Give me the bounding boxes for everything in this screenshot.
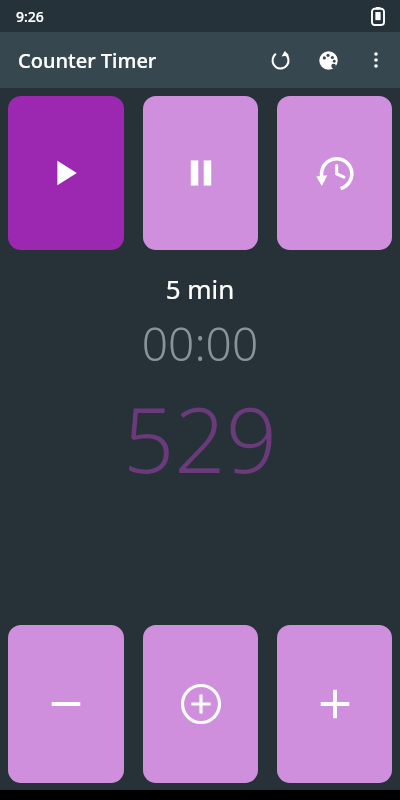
button[interactable]: Start <box>8 96 124 250</box>
staticText: 00:00 <box>0 312 400 375</box>
staticText: 5 min <box>0 271 400 306</box>
button[interactable]: Increase <box>277 625 392 783</box>
staticText: 9:26 <box>16 7 44 26</box>
button[interactable]: More options <box>352 36 400 84</box>
staticText: Counter Timer <box>18 47 157 74</box>
staticText: 529 <box>0 377 400 500</box>
button[interactable]: Theme <box>304 36 352 84</box>
button[interactable]: History <box>277 96 392 250</box>
button[interactable]: Reset <box>256 36 304 84</box>
button[interactable]: Decrease <box>8 625 124 783</box>
button[interactable]: Add with circle <box>143 625 258 783</box>
button[interactable]: Pause <box>143 96 258 250</box>
